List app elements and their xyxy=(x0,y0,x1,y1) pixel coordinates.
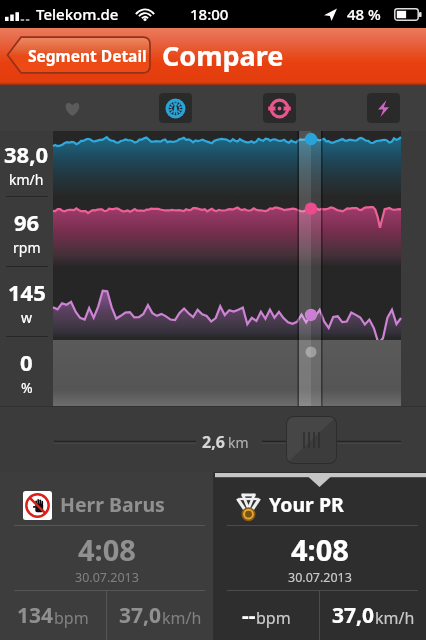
button[interactable]: Segment Detail xyxy=(6,36,151,74)
staticText: w xyxy=(21,308,33,327)
staticText: bpm xyxy=(54,607,89,629)
staticText: Your PR xyxy=(269,491,344,518)
staticText: 30.07.2013 xyxy=(288,569,352,586)
staticText: -- xyxy=(242,601,256,630)
staticText: Segment Detail xyxy=(28,45,147,66)
staticText: % xyxy=(21,378,33,397)
staticText: 37,0 xyxy=(332,601,375,630)
staticText: 37,0 xyxy=(119,601,162,630)
staticText: 30.07.2013 xyxy=(75,569,139,586)
staticText: 0 xyxy=(20,347,33,377)
staticText: Compare xyxy=(162,37,284,74)
staticText: 48 % xyxy=(347,4,381,24)
staticText: km/h xyxy=(9,170,44,189)
staticText: 96 xyxy=(14,207,40,237)
staticText: 4:08 xyxy=(291,530,349,569)
button[interactable]: Favorite xyxy=(55,91,90,126)
button[interactable]: Cadence xyxy=(263,93,296,123)
button[interactable]: Power xyxy=(367,93,400,123)
staticText: bpm xyxy=(256,607,291,629)
staticText: 145 xyxy=(8,277,46,307)
staticText: Telekom.de xyxy=(36,4,119,24)
staticText: km/h xyxy=(162,607,202,629)
staticText: 38,0 xyxy=(4,139,49,169)
staticText: 18:00 xyxy=(190,4,229,24)
staticText: 4:08 xyxy=(78,530,136,569)
staticText: 2,6 xyxy=(202,431,225,453)
button[interactable]: Herr Barus xyxy=(0,472,213,640)
staticText: Herr Barus xyxy=(60,491,165,518)
staticText: rpm xyxy=(13,238,41,257)
staticText: km xyxy=(228,433,249,452)
button[interactable]: Your PR xyxy=(213,472,426,640)
button[interactable]: Resize range xyxy=(286,416,337,464)
button[interactable]: Speed xyxy=(159,93,192,123)
staticText: 134 xyxy=(17,601,54,630)
staticText: km/h xyxy=(375,607,415,629)
